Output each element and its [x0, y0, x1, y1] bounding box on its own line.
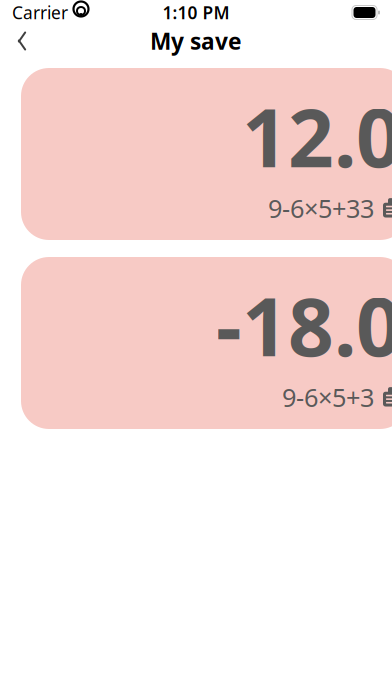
staticText: Carrier: [12, 1, 68, 24]
staticText: -18.0: [216, 272, 392, 378]
staticText: My save: [150, 26, 242, 56]
staticText: 9-6×5+33: [268, 191, 374, 225]
staticText: 1:10 PM: [162, 1, 229, 24]
button[interactable]: Back: [2, 25, 42, 57]
button[interactable]: -18.0: [21, 257, 392, 429]
staticText: 12.0: [242, 83, 392, 189]
button[interactable]: 12.0: [21, 68, 392, 240]
staticText: 9-6×5+3: [282, 380, 374, 414]
